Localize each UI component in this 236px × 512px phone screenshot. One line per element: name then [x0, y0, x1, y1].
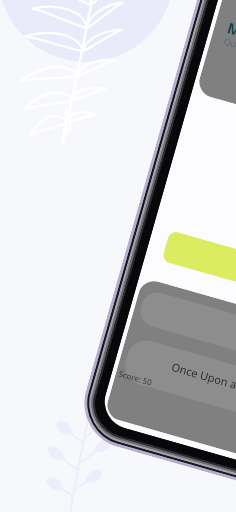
staticText: My Quiz [225, 17, 236, 53]
staticText: Once Upon a Time [170, 359, 236, 400]
button[interactable] [161, 230, 236, 305]
staticText: Score: 50 [117, 368, 154, 388]
button[interactable]: My Quiz [196, 0, 236, 144]
button[interactable] [120, 336, 236, 427]
button[interactable] [136, 289, 236, 370]
staticText: Question 3 of 10 [222, 35, 236, 65]
